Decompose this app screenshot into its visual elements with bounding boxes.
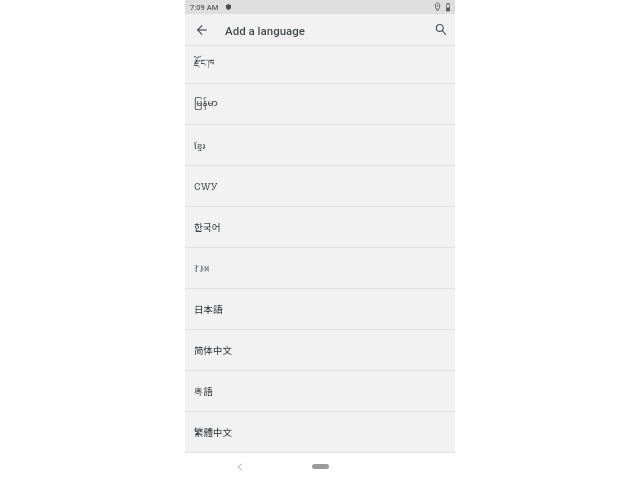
button[interactable]: Back — [231, 458, 249, 476]
button[interactable]: ខ្មែរ — [185, 125, 455, 165]
button[interactable]: 粤語 — [185, 371, 455, 411]
staticText: ᏣᎳᎩ — [194, 180, 218, 193]
button[interactable]: 한국어 — [185, 207, 455, 247]
staticText: 简体中文 — [194, 343, 233, 357]
staticText: 7:09 AM — [190, 3, 219, 12]
staticText: ꆈꌠꉙ — [194, 262, 210, 275]
staticText: རྫོང་ཁ — [194, 52, 215, 78]
button[interactable]: ꆈꌠꉙ — [185, 248, 455, 288]
staticText: ខ្មែរ — [194, 139, 206, 151]
staticText: 粤語 — [194, 384, 214, 398]
button[interactable]: 繁體中文 — [185, 412, 455, 452]
button[interactable]: Home — [312, 464, 329, 469]
staticText: မြန်မာ — [194, 94, 218, 114]
button[interactable]: 日本語 — [185, 289, 455, 329]
button[interactable]: རྫོང་ཁ — [185, 46, 455, 83]
button[interactable]: 简体中文 — [185, 330, 455, 370]
button[interactable]: မြန်မာ — [185, 84, 455, 124]
staticText: 한국어 — [194, 220, 221, 234]
staticText: 日本語 — [194, 302, 223, 316]
button[interactable]: ᏣᎳᎩ — [185, 166, 455, 206]
staticText: 繁體中文 — [194, 425, 233, 439]
staticText: Add a language — [225, 24, 305, 37]
button[interactable]: Navigate up — [185, 14, 215, 46]
button[interactable]: Search — [425, 14, 455, 46]
